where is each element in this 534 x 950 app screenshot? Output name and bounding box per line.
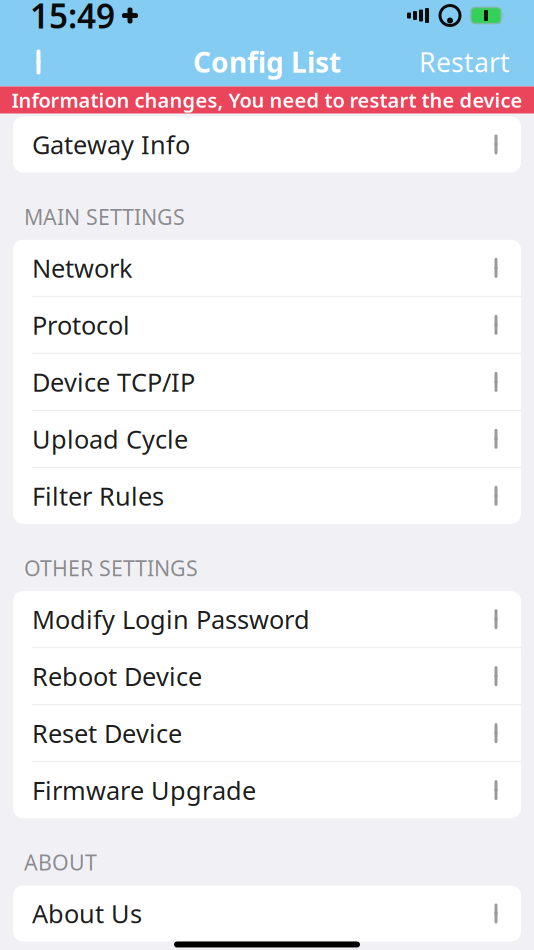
button[interactable]: About Us (13, 885, 521, 941)
staticText: Firmware Upgrade (32, 773, 256, 807)
staticText: Gateway Info (32, 128, 190, 161)
staticText: Modify Login Password (32, 602, 310, 636)
button[interactable]: Upload Cycle (13, 411, 521, 467)
staticText: OTHER SETTINGS (24, 554, 198, 582)
staticText: Restart (419, 44, 510, 80)
staticText: Protocol (32, 308, 130, 342)
staticText: MAIN SETTINGS (24, 202, 185, 231)
button[interactable]: Network (13, 240, 521, 296)
button[interactable]: Restart (409, 38, 520, 86)
button[interactable]: Firmware Upgrade (13, 762, 521, 818)
staticText: Network (32, 251, 133, 285)
button[interactable]: Device TCP/IP (13, 354, 521, 410)
button[interactable]: Reboot Device (13, 648, 521, 704)
staticText: Reset Device (32, 716, 182, 750)
button[interactable]: Reset Device (13, 705, 521, 761)
staticText: Config List (193, 43, 341, 81)
button[interactable]: Modify Login Password (13, 591, 521, 647)
button[interactable]: Gateway Info (13, 116, 521, 172)
staticText: Reboot Device (32, 659, 202, 693)
staticText: Upload Cycle (32, 422, 188, 456)
staticText: Filter Rules (32, 479, 164, 513)
staticText: ABOUT (24, 848, 97, 876)
staticText: About Us (32, 897, 142, 930)
staticText: 15:49 (30, 0, 115, 38)
staticText: Device TCP/IP (32, 365, 195, 399)
button[interactable]: Back (14, 38, 68, 86)
button[interactable]: Filter Rules (13, 468, 521, 524)
staticText: Information changes, You need to restart… (11, 87, 522, 113)
button[interactable]: Protocol (13, 297, 521, 353)
